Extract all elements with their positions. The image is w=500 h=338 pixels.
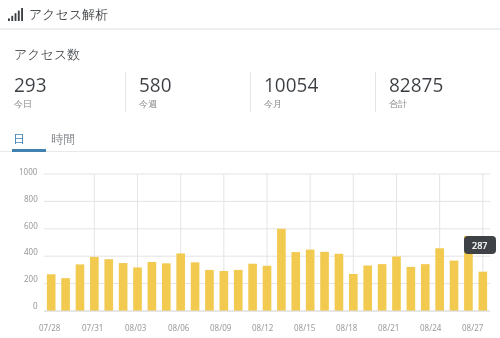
staticText: 800 (24, 193, 38, 204)
staticText: 07/28 (39, 322, 61, 333)
staticText: 08/18 (336, 322, 358, 333)
staticText: 合計 (389, 98, 407, 109)
staticText: 293 (14, 72, 47, 98)
staticText: 08/24 (420, 322, 442, 333)
staticText: アクセス数 (14, 46, 81, 62)
staticText: 08/27 (462, 322, 484, 333)
staticText: 580 (139, 72, 172, 98)
staticText: 08/21 (378, 322, 400, 333)
button[interactable]: Access analytics (0, 0, 500, 28)
staticText: アクセス解析 (29, 6, 109, 22)
staticText: 08/12 (252, 322, 274, 333)
staticText: 82875 (389, 72, 444, 98)
button[interactable]: 時間 (38, 126, 88, 151)
button[interactable]: 287 (464, 236, 496, 254)
staticText: 1000 (19, 166, 38, 177)
button[interactable]: 日 (0, 126, 38, 151)
staticText: 日 (13, 131, 25, 146)
staticText: 07/31 (82, 322, 104, 333)
staticText: 08/06 (168, 322, 190, 333)
staticText: 今日 (14, 98, 32, 109)
staticText: 287 (472, 239, 488, 251)
staticText: 08/03 (125, 322, 147, 333)
staticText: 今月 (264, 98, 282, 109)
staticText: 08/15 (294, 322, 316, 333)
staticText: 0 (33, 300, 38, 311)
staticText: 08/09 (210, 322, 232, 333)
staticText: 600 (24, 220, 38, 231)
staticText: 400 (24, 246, 38, 257)
staticText: 今週 (139, 98, 157, 109)
staticText: 10054 (264, 72, 319, 98)
other: Access analytics (8, 8, 23, 21)
staticText: 200 (24, 273, 38, 284)
staticText: 時間 (51, 131, 75, 146)
